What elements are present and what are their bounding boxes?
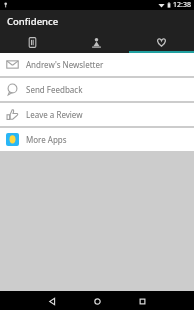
- button[interactable]: Favorites: [129, 32, 194, 53]
- button[interactable]: More Apps: [0, 128, 194, 151]
- button[interactable]: Home: [89, 293, 105, 309]
- staticText: Leave a Review: [26, 109, 83, 120]
- staticText: Confidence: [7, 15, 59, 28]
- button[interactable]: Profile: [64, 32, 129, 53]
- button[interactable]: Andrew's Newsletter: [0, 53, 194, 76]
- button[interactable]: Send Feedback: [0, 78, 194, 101]
- staticText: Send Feedback: [26, 84, 83, 95]
- button[interactable]: Back: [44, 293, 60, 309]
- staticText: Andrew's Newsletter: [26, 59, 104, 70]
- staticText: 12:38: [173, 0, 191, 10]
- button[interactable]: Leave a Review: [0, 103, 194, 126]
- staticText: More Apps: [26, 134, 67, 145]
- button[interactable]: Library: [0, 32, 64, 53]
- button[interactable]: Recents: [134, 293, 150, 309]
